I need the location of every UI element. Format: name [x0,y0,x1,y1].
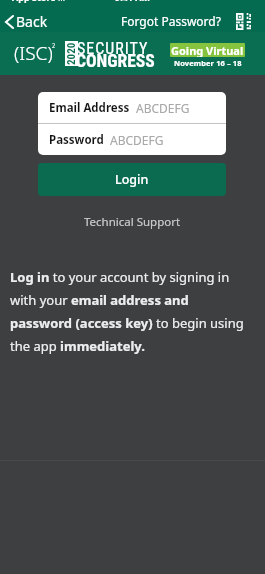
staticText: Forgot Password? [121,13,221,29]
button[interactable]: Email Address [38,92,226,123]
staticText: 9:41 AM [115,0,151,3]
staticText: 2020 [65,42,78,65]
staticText: Going Virtual [171,43,244,57]
staticText: (ISC) [14,40,53,66]
button[interactable]: Forgot Password? [118,10,224,32]
staticText: App Store [12,0,56,3]
button[interactable]: Login [38,163,226,196]
button[interactable]: Scan QR code [234,12,253,31]
staticText: Technical Support [84,214,181,230]
staticText: November 16 – 18 [174,58,242,68]
staticText: Email Address [49,100,130,116]
staticText: ² [52,42,56,54]
button[interactable]: Back [0,9,54,34]
staticText: SECURITY [77,39,149,58]
staticText: Password [49,132,104,148]
staticText: ıll [58,0,65,3]
staticText: Login [115,171,149,188]
staticText: Log in to your account by signing in wit… [10,268,249,355]
staticText: Back [16,12,48,31]
staticText: ABCDEFG [110,132,164,148]
button[interactable]: Password [38,124,226,155]
button[interactable]: Technical Support [0,211,265,233]
staticText: ABCDEFG [136,100,190,116]
staticText: CONGRESS [76,51,155,72]
